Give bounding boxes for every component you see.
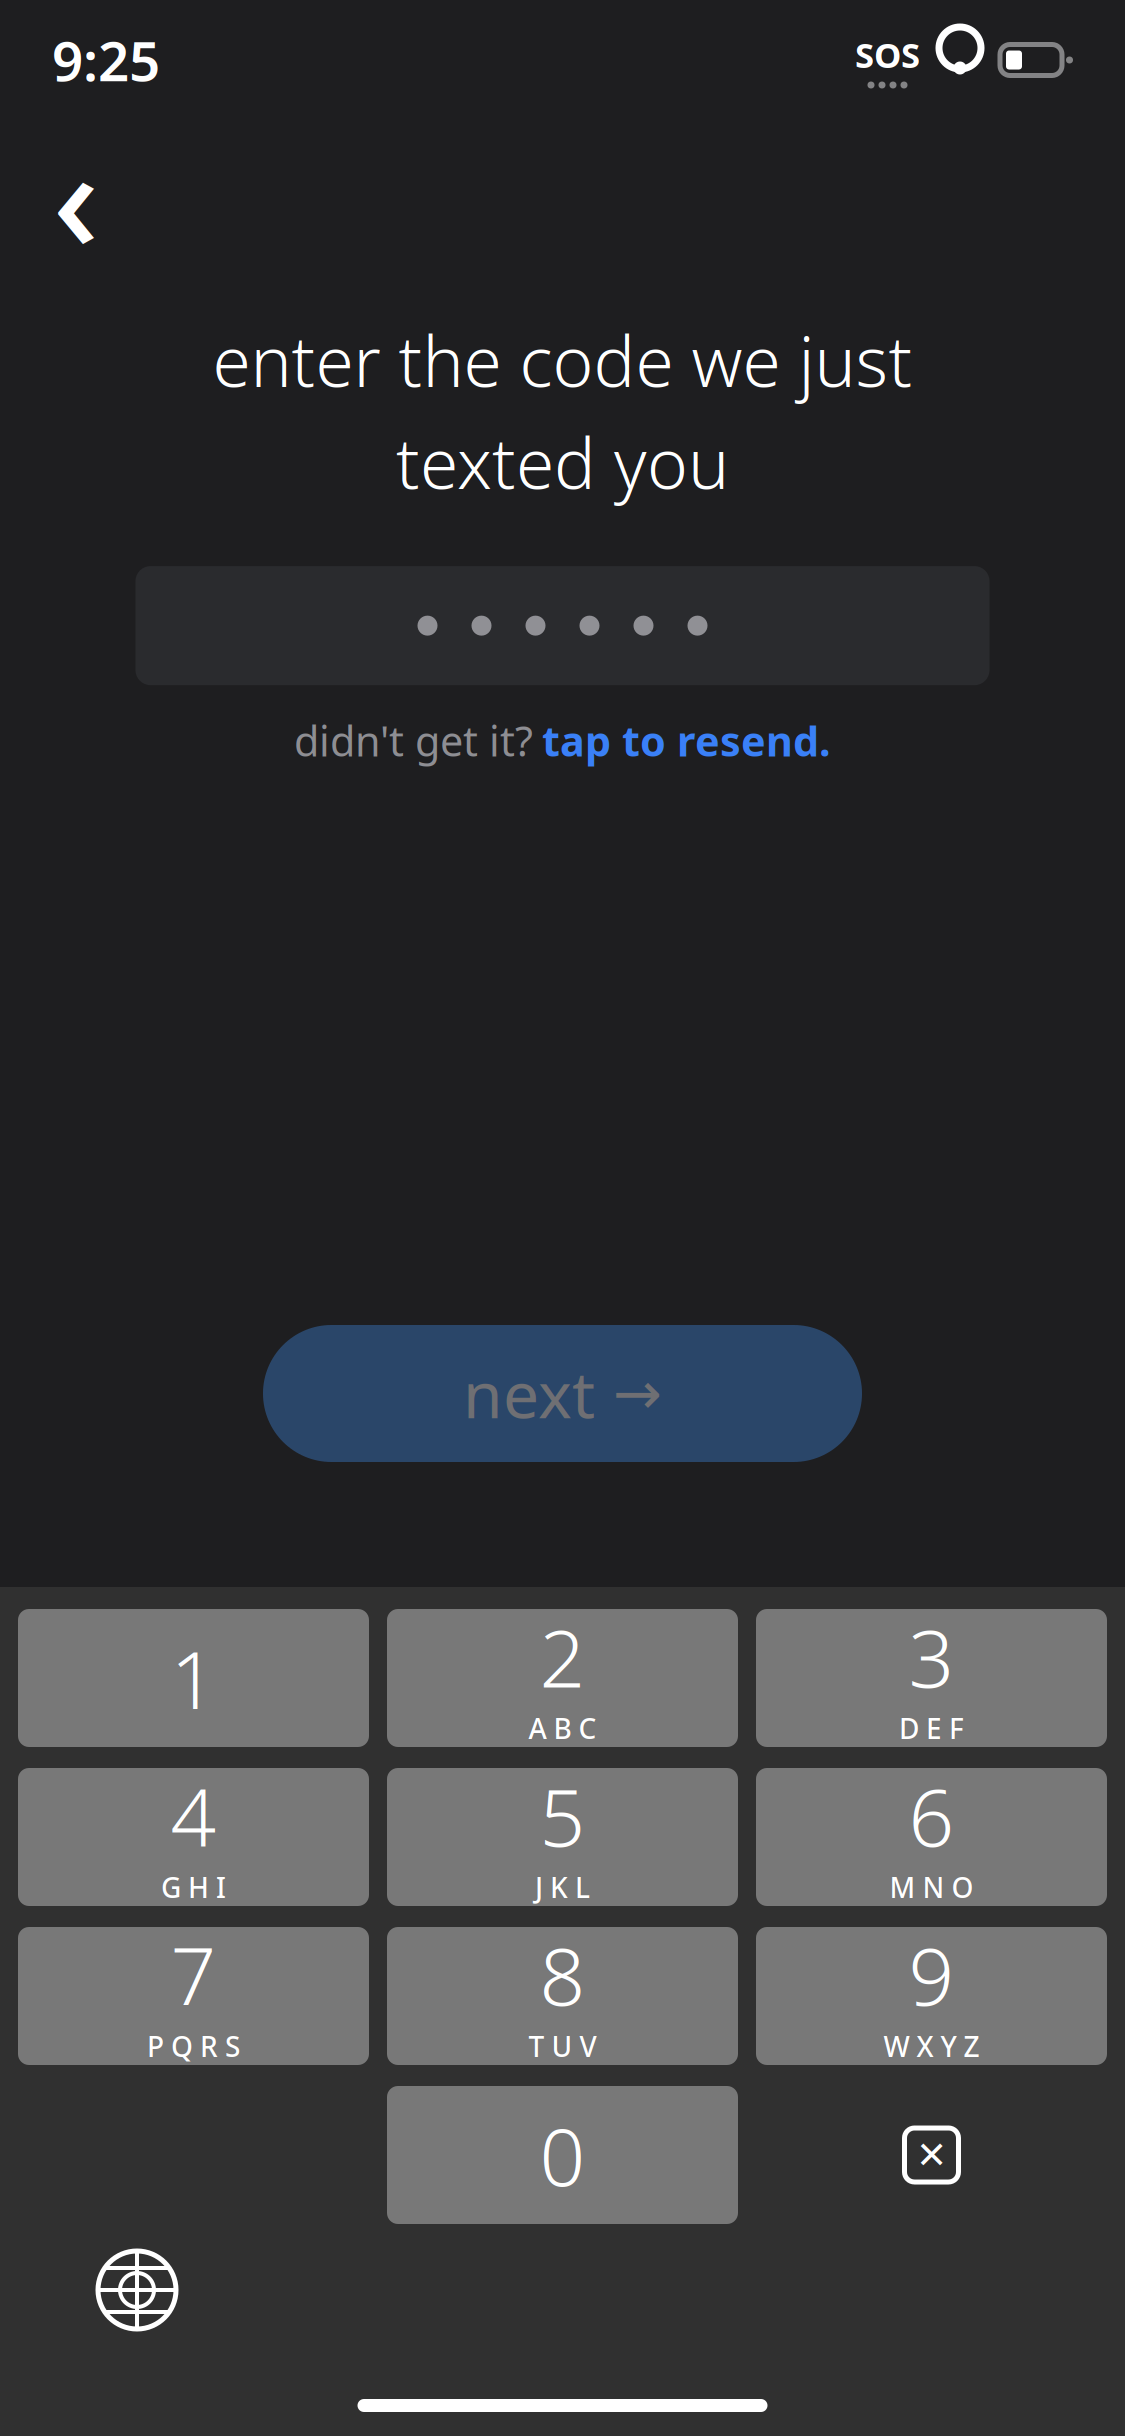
staticText: 8 [539, 1921, 585, 2027]
staticText: W X Y Z [883, 2027, 979, 2065]
staticText: 9:25 [52, 24, 160, 96]
staticText: didn't get it? [294, 713, 533, 768]
button[interactable]: 9 [756, 1927, 1107, 2065]
button[interactable]: 0 [387, 2086, 738, 2224]
staticText: 9 [908, 1921, 954, 2027]
staticText: 6 [908, 1762, 954, 1868]
staticText: T U V [528, 2027, 596, 2065]
staticText: next [463, 1351, 595, 1436]
button[interactable]: 1 [18, 1609, 369, 1747]
button[interactable]: Change keyboard language [77, 2230, 197, 2350]
staticText: 5 [539, 1762, 585, 1868]
button[interactable]: 6 [756, 1768, 1107, 1906]
staticText: → [613, 1360, 662, 1427]
staticText: A B C [528, 1709, 596, 1747]
button[interactable]: tap to resend. [542, 713, 831, 768]
staticText: 4 [170, 1762, 216, 1868]
staticText: J K L [535, 1868, 590, 1906]
staticText: ‹ [52, 100, 99, 292]
staticText: M N O [889, 1868, 973, 1906]
button[interactable]: next [263, 1325, 862, 1462]
staticText: tap to resend. [542, 713, 831, 768]
staticText: 0 [539, 2102, 585, 2208]
staticText: ✕ [916, 2134, 947, 2176]
staticText: SOS [855, 31, 920, 77]
staticText: 2 [539, 1603, 585, 1709]
staticText: G H I [161, 1868, 226, 1906]
button[interactable]: 3 [756, 1609, 1107, 1747]
staticText: texted you [396, 416, 729, 508]
button[interactable]: 7 [18, 1927, 369, 2065]
button[interactable]: Delete [756, 2086, 1107, 2224]
button[interactable]: 5 [387, 1768, 738, 1906]
button[interactable]: 8 [387, 1927, 738, 2065]
staticText: enter the code we just [212, 314, 912, 406]
button[interactable]: Back [28, 148, 124, 244]
button[interactable]: 2 [387, 1609, 738, 1747]
staticText: 7 [170, 1921, 216, 2027]
staticText: 3 [908, 1603, 954, 1709]
staticText: 1 [170, 1625, 216, 1731]
staticText: D E F [899, 1709, 964, 1747]
staticText: P Q R S [147, 2027, 240, 2065]
button[interactable]: 4 [18, 1768, 369, 1906]
